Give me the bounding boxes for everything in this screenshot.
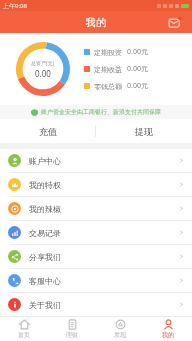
- button[interactable]: 我的辣椒: [0, 197, 192, 220]
- staticText: 分享我们: [29, 252, 61, 262]
- staticText: 关于我们: [29, 300, 61, 310]
- button[interactable]: 客服中心: [0, 269, 192, 292]
- staticText: 0.00: [35, 68, 51, 79]
- button[interactable]: 交易记录: [0, 221, 192, 244]
- staticText: 我的特权: [29, 180, 61, 190]
- staticText: 零钱总额: [94, 82, 122, 91]
- staticText: 充值: [39, 126, 57, 137]
- staticText: 定期投资: [94, 48, 122, 57]
- staticText: 交易记录: [29, 228, 61, 238]
- button[interactable]: 发现: [96, 317, 144, 341]
- staticText: 我的: [162, 331, 174, 339]
- button[interactable]: Messages: [166, 13, 184, 31]
- button[interactable]: 账户中心: [0, 149, 192, 172]
- staticText: 理财: [66, 331, 78, 339]
- staticText: 0.00元: [127, 47, 148, 57]
- button[interactable]: 我的特权: [0, 173, 192, 196]
- staticText: 定期收益: [94, 65, 122, 74]
- staticText: 0.00元: [127, 81, 148, 91]
- button[interactable]: 我的: [144, 317, 192, 341]
- staticText: 上午9:08: [3, 2, 27, 10]
- staticText: 0.00元: [127, 64, 148, 74]
- button[interactable]: 分享我们: [0, 245, 192, 268]
- staticText: 提现: [135, 126, 153, 137]
- button[interactable]: 提现: [96, 119, 192, 143]
- staticText: 发现: [114, 331, 126, 339]
- staticText: 我的: [86, 16, 106, 29]
- button[interactable]: 充值: [0, 119, 95, 143]
- staticText: 我的辣椒: [29, 204, 61, 214]
- button[interactable]: 理财: [48, 317, 96, 341]
- staticText: 账户资金安全由工商银行、新浪支付共同保障: [41, 108, 161, 116]
- staticText: 首页: [18, 331, 30, 339]
- staticText: 客服中心: [29, 276, 61, 286]
- button[interactable]: 关于我们: [0, 293, 192, 316]
- staticText: 账户中心: [29, 156, 61, 166]
- staticText: 总资产(元): [31, 60, 55, 67]
- button[interactable]: 首页: [0, 317, 48, 341]
